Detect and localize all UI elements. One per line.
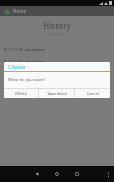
button[interactable]: Delete <box>4 89 38 98</box>
button[interactable]: Home <box>47 166 67 182</box>
staticText: History <box>0 20 114 31</box>
staticText: View detail <box>47 91 67 96</box>
staticText: 2016-01-16 <box>46 33 63 37</box>
staticText: Home <box>13 8 26 14</box>
staticText: Cancel <box>87 91 99 96</box>
button[interactable]: Cancel <box>75 89 110 98</box>
button[interactable]: Back <box>27 166 47 182</box>
button[interactable]: 16-17 11:05 - Incomplete <box>0 46 114 52</box>
button[interactable]: More options <box>102 166 114 182</box>
button[interactable]: Recent apps <box>67 166 87 182</box>
button[interactable]: View detail <box>39 89 74 98</box>
staticText: 16-17 11:05 - Incomplete <box>3 47 46 52</box>
staticText: Delete <box>15 91 27 96</box>
staticText: 16-17 11:06 - Incomplete <box>3 59 46 64</box>
staticText: Choice <box>8 63 26 70</box>
button[interactable]: 16-17 11:06 - Incomplete <box>0 58 114 64</box>
button[interactable]: App icon Home <box>3 8 10 15</box>
staticText: What do you want? <box>8 77 46 83</box>
